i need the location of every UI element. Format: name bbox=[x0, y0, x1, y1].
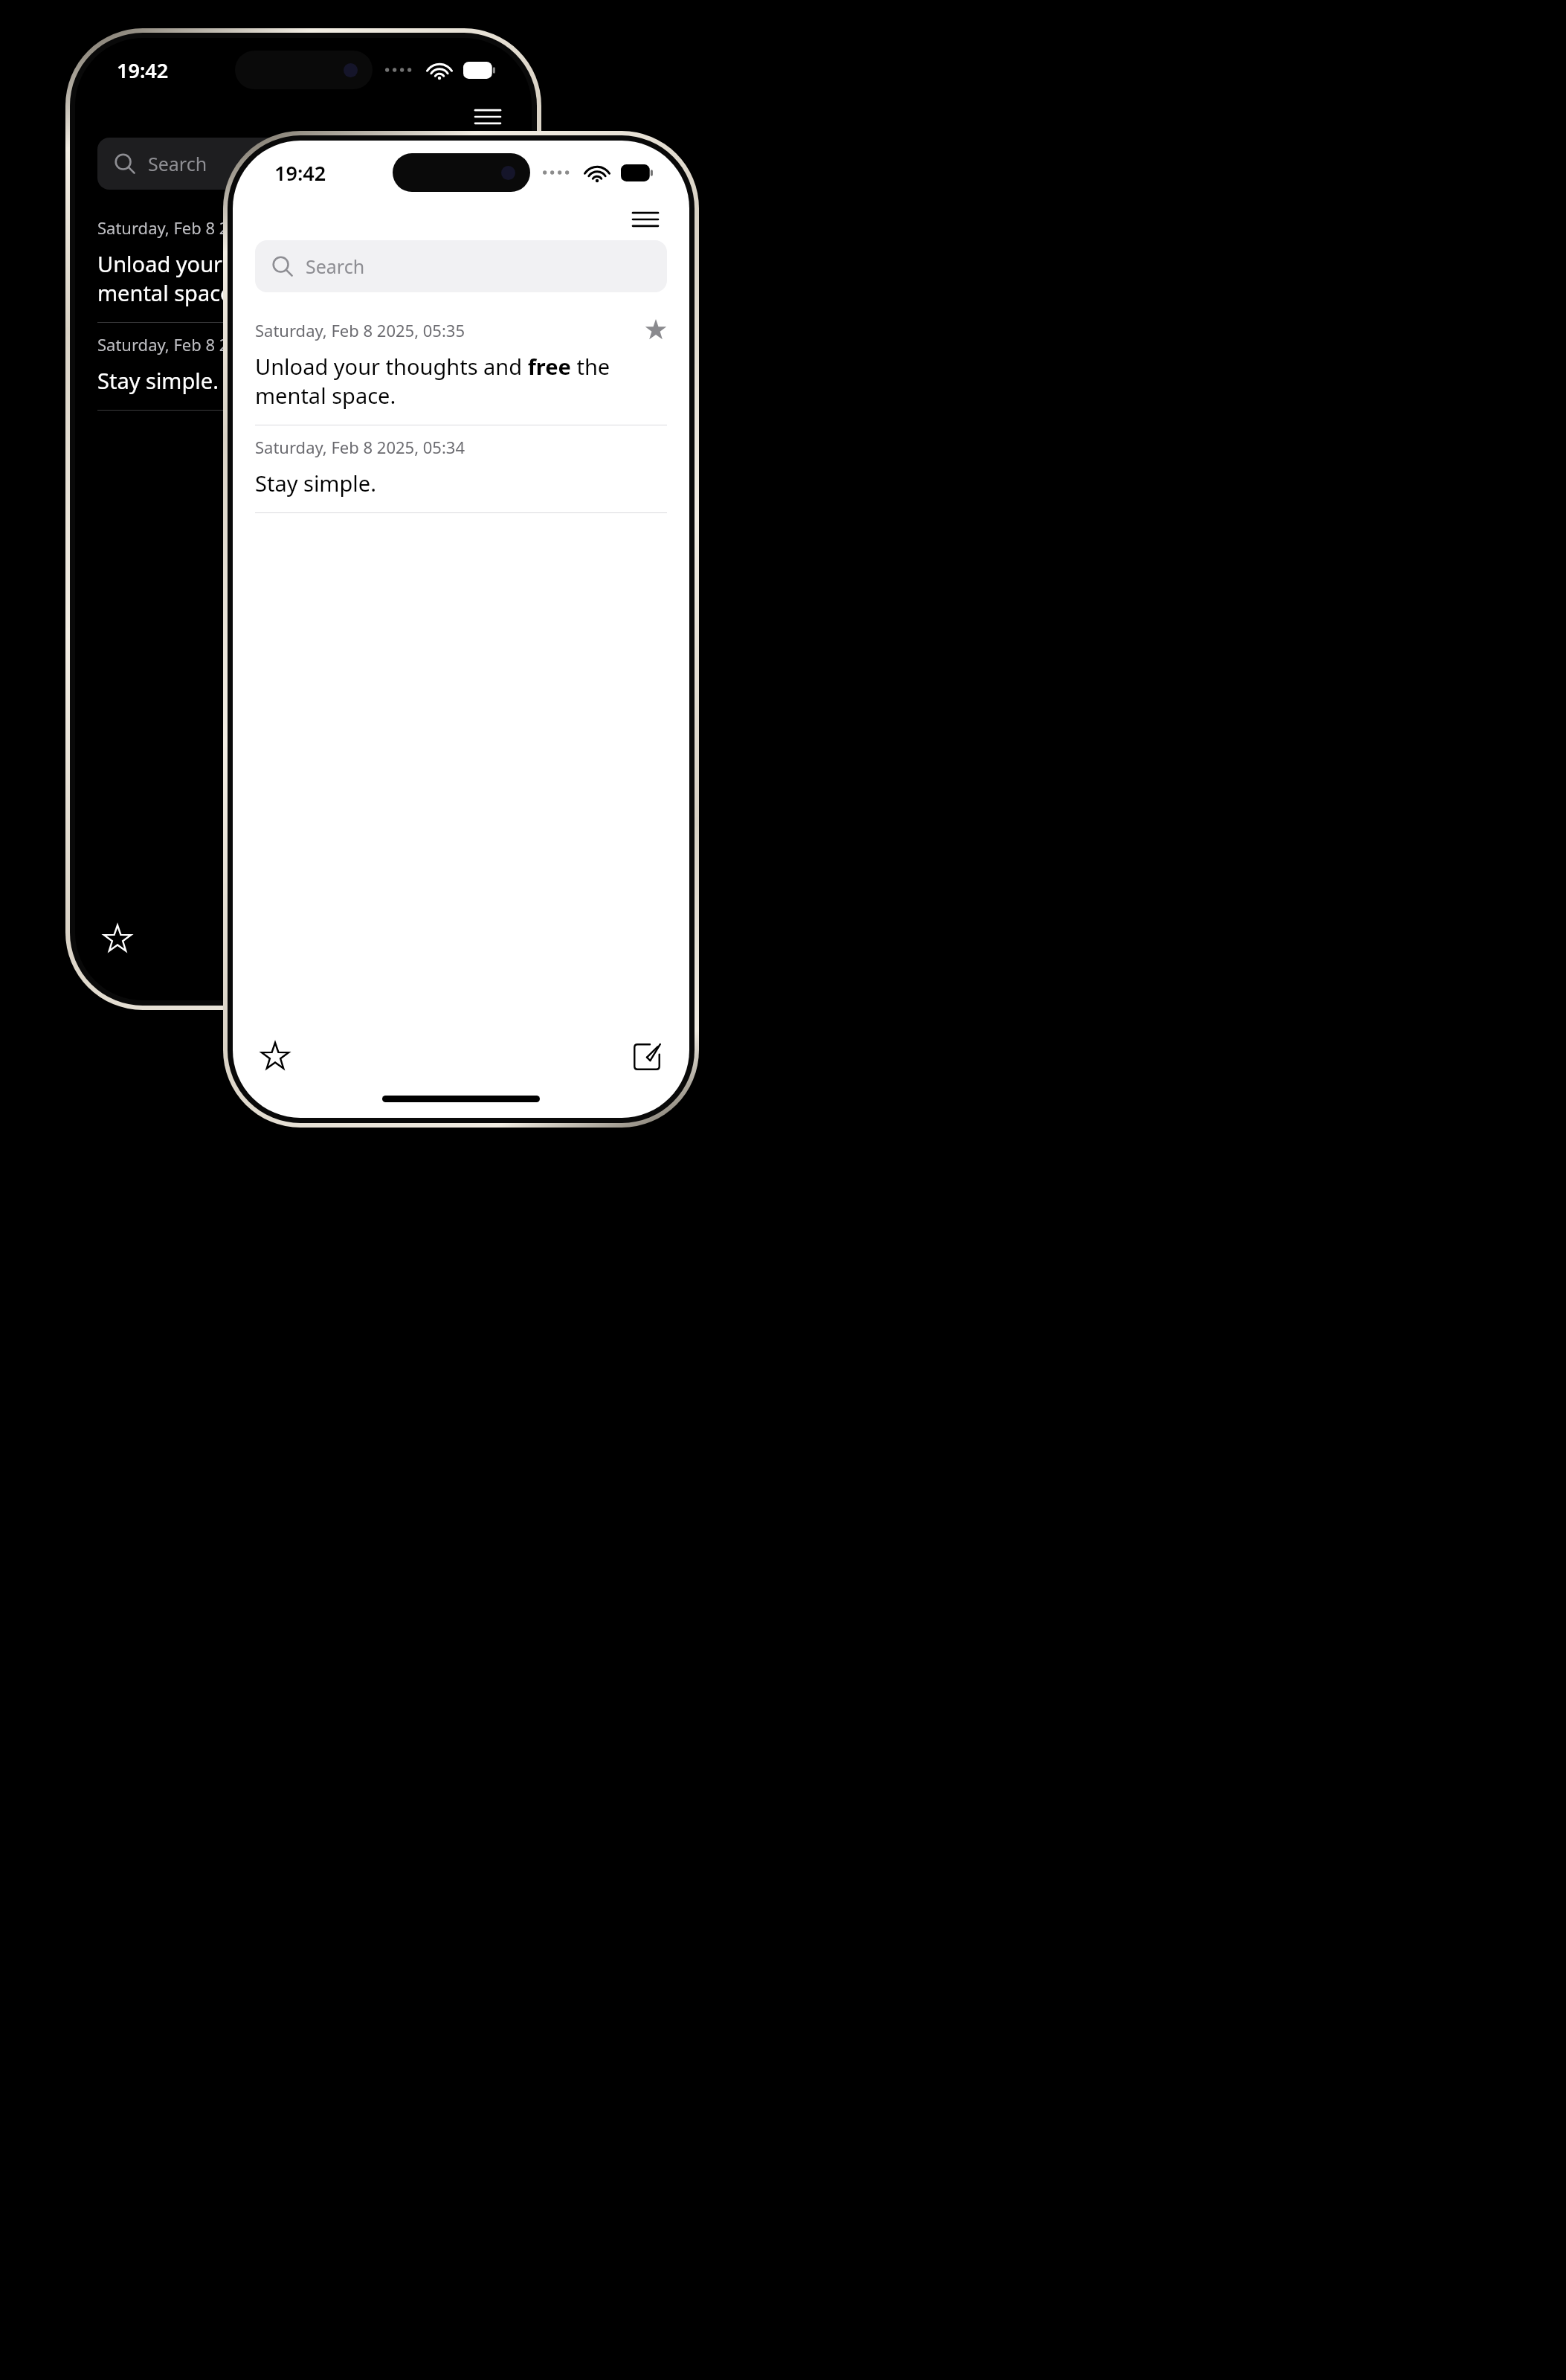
staticText: Unload your thoughts and free the mental… bbox=[255, 352, 667, 410]
staticText: Unload your thoughts and free the mental… bbox=[97, 249, 509, 307]
staticText: Search bbox=[306, 254, 365, 279]
button[interactable]: Compose new note bbox=[624, 1034, 670, 1080]
staticText: 19:42 bbox=[117, 57, 169, 84]
staticText: Saturday, Feb 8 2025, 05:34 bbox=[97, 333, 509, 356]
button[interactable]: Saturday, Feb 8 2025, 05:35 bbox=[233, 309, 689, 425]
staticText: Saturday, Feb 8 2025, 05:35 bbox=[255, 319, 645, 341]
button[interactable]: Search bbox=[255, 240, 667, 292]
button[interactable]: Menu bbox=[466, 96, 509, 138]
staticText: Stay simple. bbox=[97, 366, 219, 395]
button[interactable]: Favorites bbox=[252, 1034, 298, 1080]
button[interactable]: Search bbox=[97, 138, 509, 190]
button[interactable]: Saturday, Feb 8 2025, 05:34 bbox=[75, 323, 532, 410]
button[interactable]: Saturday, Feb 8 2025, 05:34 bbox=[233, 425, 689, 512]
staticText: Search bbox=[148, 151, 207, 176]
staticText: 19:42 bbox=[274, 159, 326, 187]
button[interactable]: Menu bbox=[624, 199, 667, 240]
staticText: Stay simple. bbox=[255, 469, 376, 498]
button[interactable]: Saturday, Feb 8 2025, 05:35 bbox=[75, 206, 532, 322]
staticText: Saturday, Feb 8 2025, 05:35 bbox=[97, 216, 487, 239]
button[interactable]: Favorites bbox=[94, 916, 141, 962]
staticText: Saturday, Feb 8 2025, 05:34 bbox=[255, 436, 667, 458]
